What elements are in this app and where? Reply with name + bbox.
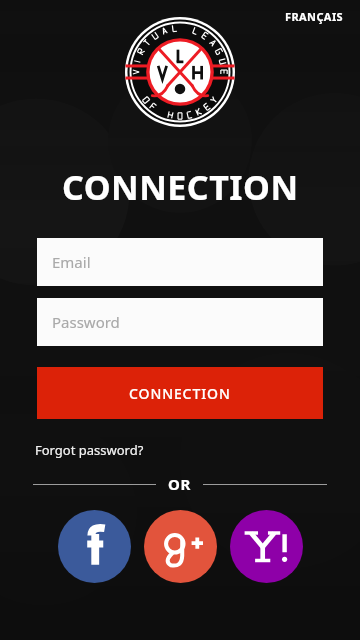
button[interactable]: Sign in with Google Plus [144,510,217,583]
staticText: CONNECTION [129,384,231,403]
staticText: CONNECTION [62,164,299,210]
button[interactable]: Sign in with Yahoo [230,510,303,583]
staticText: Email [52,252,91,272]
button[interactable]: Forgot password? [31,438,148,462]
button[interactable]: FRANÇAIS [279,4,350,29]
staticText: Password [52,312,120,332]
button[interactable]: Sign in with Facebook [58,510,131,583]
button[interactable]: Password [37,298,323,346]
staticText: FRANÇAIS [285,9,344,24]
staticText: Forgot password? [35,441,144,459]
staticText: OR [168,474,191,494]
button[interactable]: CONNECTION [37,367,323,419]
button[interactable]: Email [37,238,323,286]
other: Virtual League of Hockey logo [125,17,235,127]
